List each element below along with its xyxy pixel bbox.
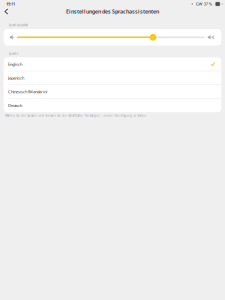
button[interactable]: Englisch bbox=[4, 57, 221, 71]
staticText: Deutsch bbox=[8, 103, 22, 108]
staticText: Englisch bbox=[8, 61, 22, 67]
button[interactable]: Zurück bbox=[0, 7, 13, 16]
staticText: Einstellungen des Sprachassistenten bbox=[66, 8, 159, 15]
staticText: Sprachlautstärke bbox=[9, 23, 29, 27]
button[interactable]: Japanisch bbox=[4, 71, 221, 85]
staticText: GW 37 % bbox=[196, 1, 212, 7]
staticText: Wählen Sie die Sprache und drücken Sie d… bbox=[5, 114, 147, 117]
staticText: Chinesisch (Mandarin) bbox=[8, 89, 47, 94]
staticText: 19:11 bbox=[6, 1, 15, 7]
button[interactable]: Chinesisch (Mandarin) bbox=[4, 85, 221, 99]
staticText: Japanisch bbox=[8, 75, 24, 80]
button[interactable]: Deutsch bbox=[4, 99, 221, 112]
staticText: Sprache bbox=[9, 52, 19, 55]
